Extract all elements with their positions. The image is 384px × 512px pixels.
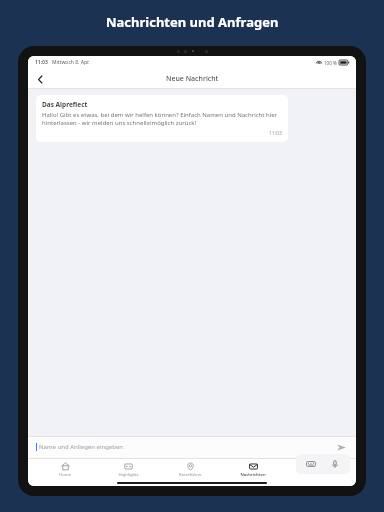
button[interactable]: Senden <box>334 440 348 454</box>
staticText: Reiseführer <box>179 472 202 478</box>
button[interactable]: Das Alpreflect <box>36 95 288 142</box>
staticText: 11:03 <box>269 130 282 137</box>
button[interactable]: Zurück <box>32 71 48 87</box>
staticText: Name und Anliegen eingeben <box>39 443 124 451</box>
staticText: Highlights <box>118 472 139 478</box>
button[interactable]: Nachrichten <box>227 460 279 479</box>
button[interactable]: Home <box>39 460 91 479</box>
button[interactable]: Highlights <box>102 460 154 479</box>
staticText: 11:03 <box>35 59 48 66</box>
staticText: Nachrichten und Anfragen <box>106 13 279 31</box>
button[interactable]: Reiseführer <box>164 460 216 479</box>
button[interactable]: Name und Anliegen eingeben <box>39 443 334 451</box>
button[interactable]: Mikrofon <box>327 456 343 472</box>
button[interactable]: Tastatur <box>303 456 319 472</box>
staticText: Nachrichten <box>240 472 266 478</box>
staticText: Hallo! Gibt es etwas, bei dem wir helfen… <box>42 111 282 127</box>
staticText: Mittwoch 8. Apr. <box>52 59 90 66</box>
staticText: 100 % <box>324 60 337 66</box>
button[interactable]: Tastatur <box>296 454 350 474</box>
staticText: Neue Nachricht <box>166 74 219 84</box>
staticText: Das Alpreflect <box>42 100 88 109</box>
staticText: Home <box>59 472 71 478</box>
